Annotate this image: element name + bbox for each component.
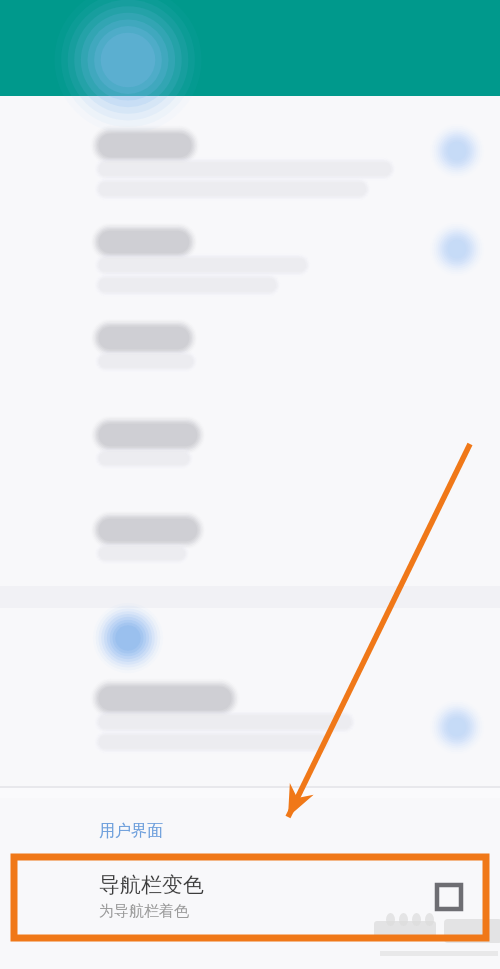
staticText: 导航栏变色	[99, 872, 204, 898]
staticText: 为导航栏着色	[99, 902, 189, 921]
button[interactable]: 用户界面	[0, 807, 500, 855]
button[interactable]: 导航栏变色 复选框	[432, 880, 466, 914]
staticText: 用户界面	[99, 821, 163, 841]
button[interactable]: 导航栏变色	[0, 855, 500, 938]
